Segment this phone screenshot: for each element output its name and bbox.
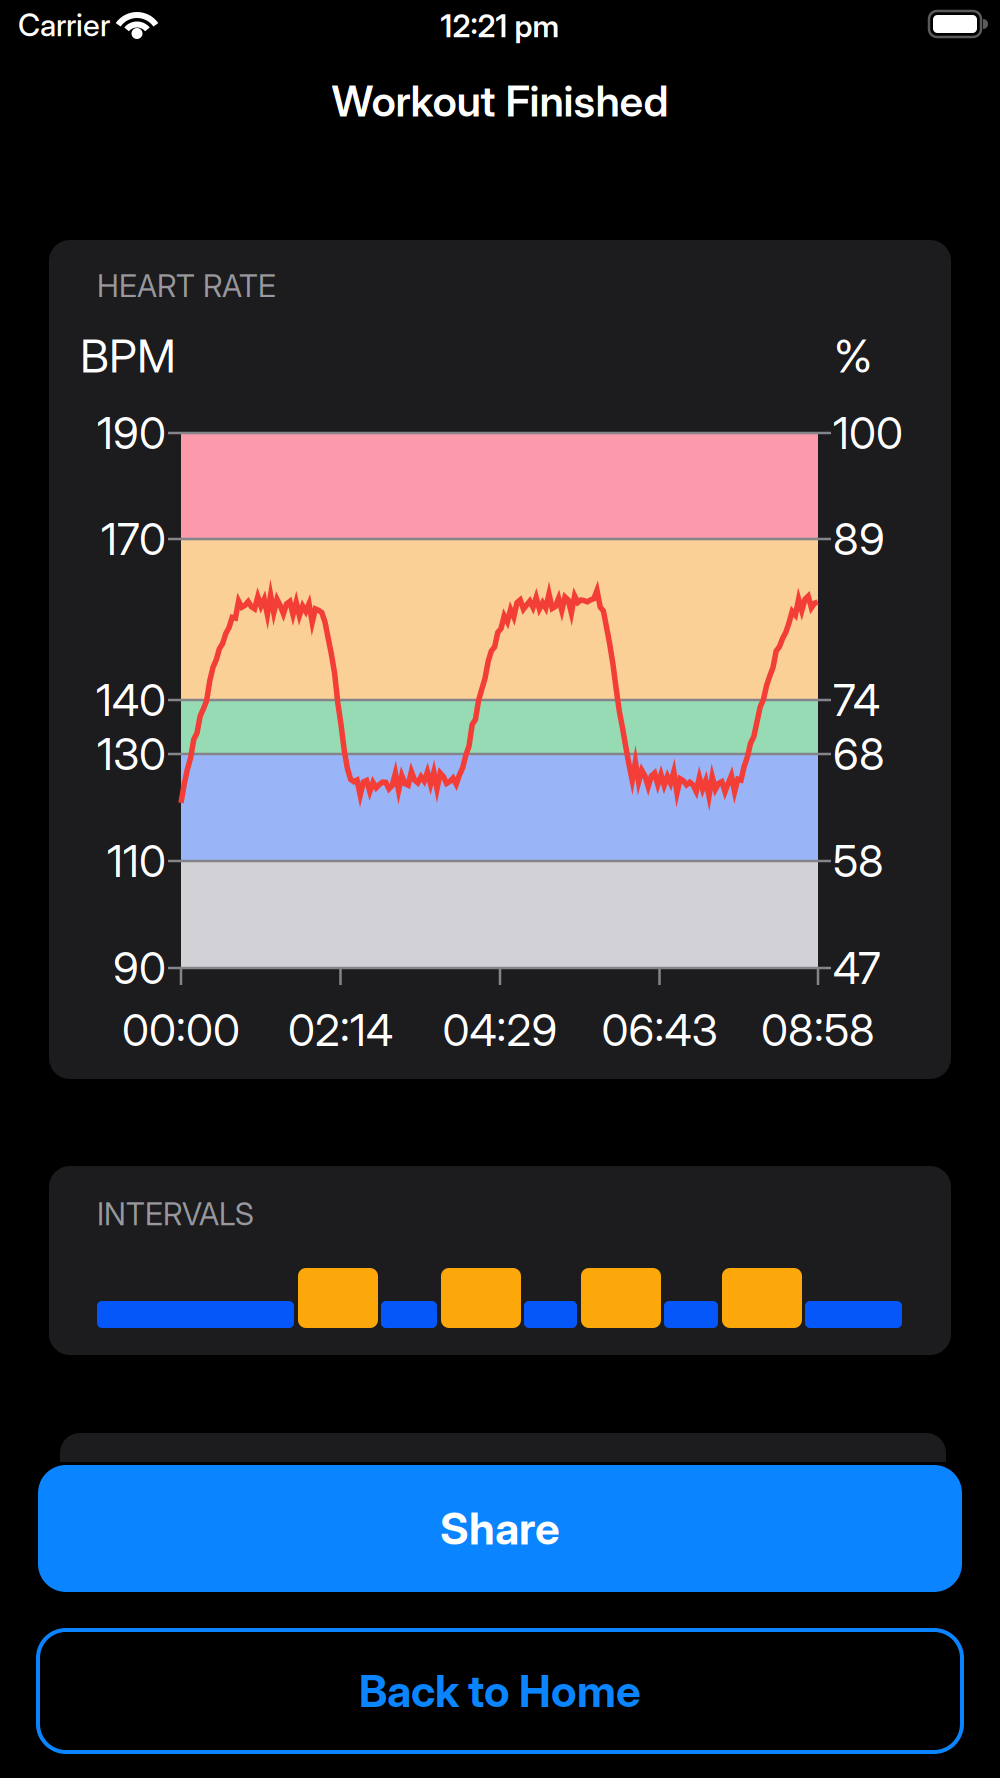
staticText: BPM bbox=[80, 329, 176, 383]
staticText: Workout Finished bbox=[331, 76, 668, 126]
staticText: % bbox=[834, 329, 872, 383]
staticText: 47 bbox=[833, 942, 881, 994]
staticText: Back to Home bbox=[359, 1665, 641, 1717]
staticText: 74 bbox=[833, 674, 880, 726]
staticText: Share bbox=[440, 1502, 560, 1554]
staticText: 02:14 bbox=[288, 1004, 393, 1056]
staticText: 12:21 pm bbox=[440, 8, 559, 44]
staticText: Carrier bbox=[18, 7, 110, 43]
staticText: 190 bbox=[97, 407, 166, 459]
staticText: 04:29 bbox=[442, 1004, 557, 1056]
staticText: 110 bbox=[107, 835, 166, 887]
staticText: 06:43 bbox=[601, 1004, 717, 1056]
staticText: 100 bbox=[833, 407, 903, 459]
staticText: 68 bbox=[833, 728, 885, 780]
staticText: HEART RATE bbox=[97, 268, 276, 304]
staticText: 00:00 bbox=[122, 1004, 240, 1056]
staticText: 58 bbox=[833, 835, 884, 887]
staticText: 90 bbox=[113, 942, 166, 994]
staticText: INTERVALS bbox=[97, 1196, 254, 1232]
staticText: 130 bbox=[97, 728, 166, 780]
staticText: 08:58 bbox=[761, 1004, 875, 1056]
staticText: 170 bbox=[101, 513, 166, 565]
button[interactable]: Back to Home bbox=[38, 1630, 962, 1752]
button[interactable]: Share bbox=[38, 1465, 962, 1592]
staticText: 140 bbox=[96, 674, 166, 726]
staticText: 89 bbox=[833, 513, 885, 565]
